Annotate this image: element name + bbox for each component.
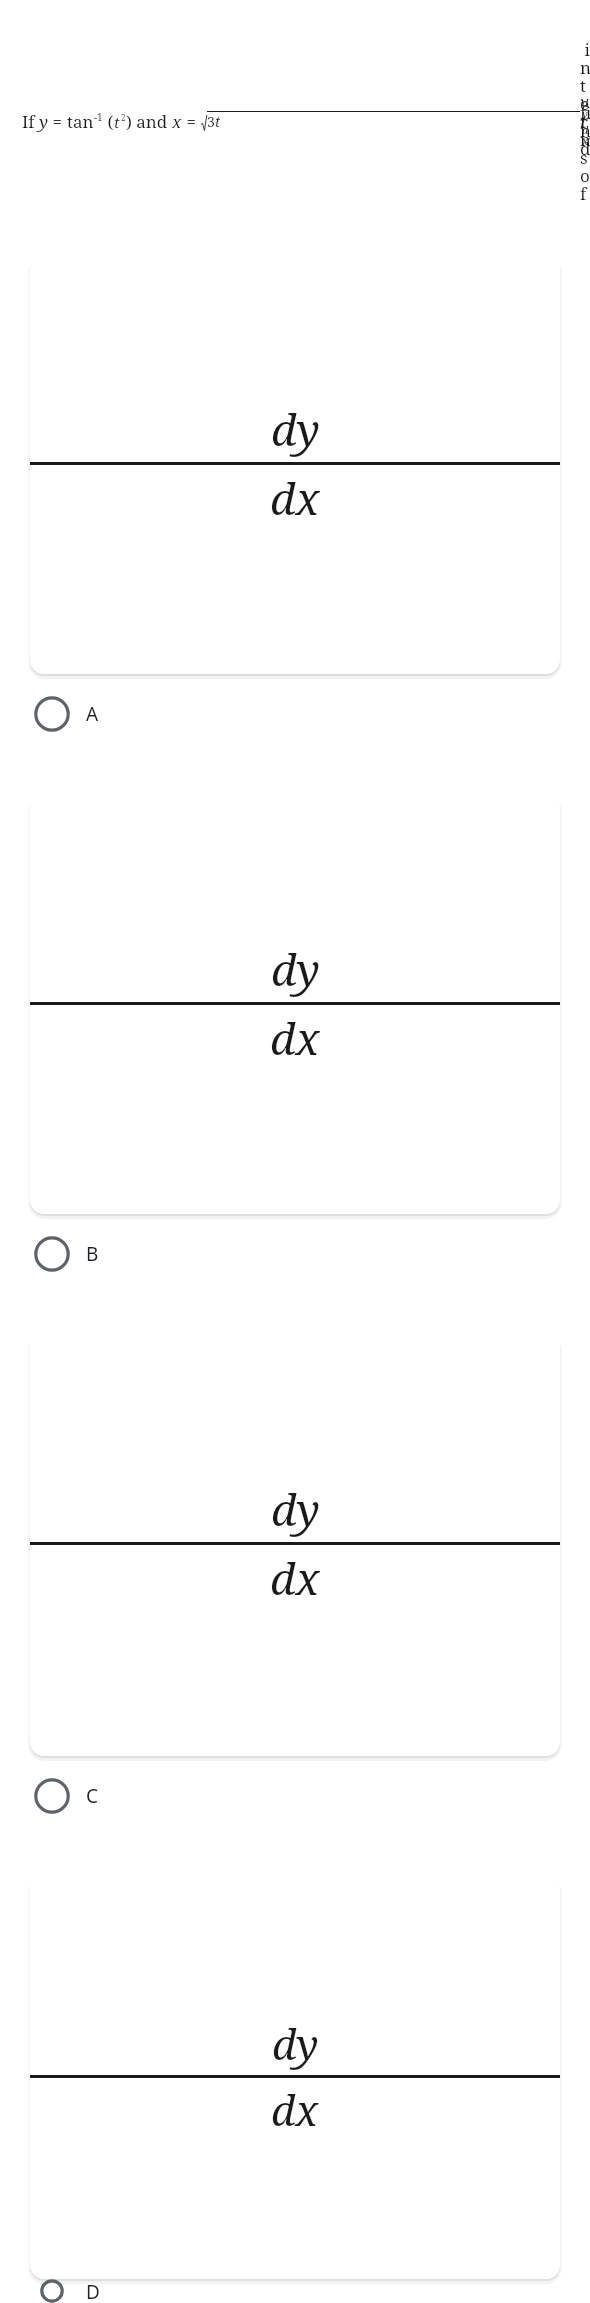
button[interactable]: Select option A: [0, 674, 590, 754]
staticText: A: [86, 701, 99, 727]
staticText: dx: [271, 2081, 319, 2138]
staticText: dx: [270, 468, 320, 528]
button[interactable]: dy: [30, 792, 560, 1214]
other: Select option B: [34, 1236, 70, 1272]
staticText: If: [22, 110, 39, 133]
staticText: C: [86, 1783, 99, 1809]
button[interactable]: Select option D: [0, 2279, 590, 2303]
staticText: =: [182, 110, 201, 133]
other: Select option D: [34, 2279, 70, 2303]
other: Select option A: [34, 696, 70, 732]
staticText: t: [114, 112, 120, 132]
staticText: (: [103, 110, 114, 133]
staticText: dy: [272, 2015, 319, 2072]
staticText: 2: [121, 112, 126, 123]
button[interactable]: dy: [30, 253, 560, 674]
staticText: 3: [207, 112, 215, 131]
staticText: dy: [271, 939, 320, 999]
staticText: x: [172, 110, 182, 133]
staticText: dx: [270, 1548, 320, 1608]
staticText: dy: [271, 399, 320, 459]
staticText: ) and: [126, 110, 172, 133]
other: Select option C: [34, 1778, 70, 1814]
staticText: y: [39, 110, 48, 133]
staticText: dy: [271, 1479, 320, 1539]
button[interactable]: dy: [30, 1331, 560, 1756]
staticText: D: [86, 2279, 100, 2303]
button[interactable]: Select option B: [0, 1214, 590, 1294]
staticText: B: [86, 1241, 99, 1267]
staticText: -1: [94, 110, 103, 124]
staticText: =: [48, 110, 67, 133]
button[interactable]: Select option C: [0, 1756, 590, 1836]
button[interactable]: dy: [30, 1874, 560, 2279]
staticText: t: [215, 112, 221, 131]
staticText: dx: [270, 1008, 320, 1068]
staticText: tan: [67, 110, 94, 133]
